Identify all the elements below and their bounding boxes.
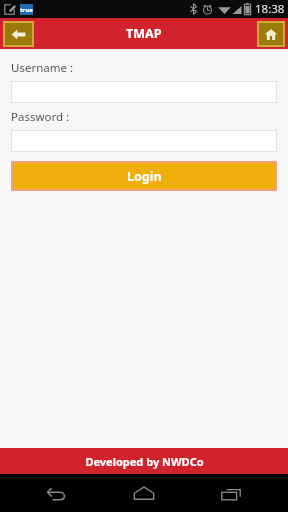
button[interactable]	[11, 81, 277, 103]
button[interactable]: Back	[5, 23, 32, 45]
button[interactable]: Back	[27, 474, 87, 512]
staticText: Username :	[11, 60, 74, 76]
button[interactable]	[11, 130, 277, 152]
staticText: Password :	[11, 109, 70, 125]
staticText: Login	[127, 168, 162, 185]
button[interactable]: Recent apps	[201, 474, 261, 512]
button[interactable]: Home	[114, 474, 174, 512]
staticText: true	[20, 6, 33, 14]
staticText: TMAP	[126, 25, 162, 42]
button[interactable]: Login	[13, 163, 275, 189]
staticText: Developed by NWDCo	[85, 454, 204, 469]
button[interactable]: Home	[259, 23, 283, 45]
staticText: 18:38	[255, 1, 285, 17]
